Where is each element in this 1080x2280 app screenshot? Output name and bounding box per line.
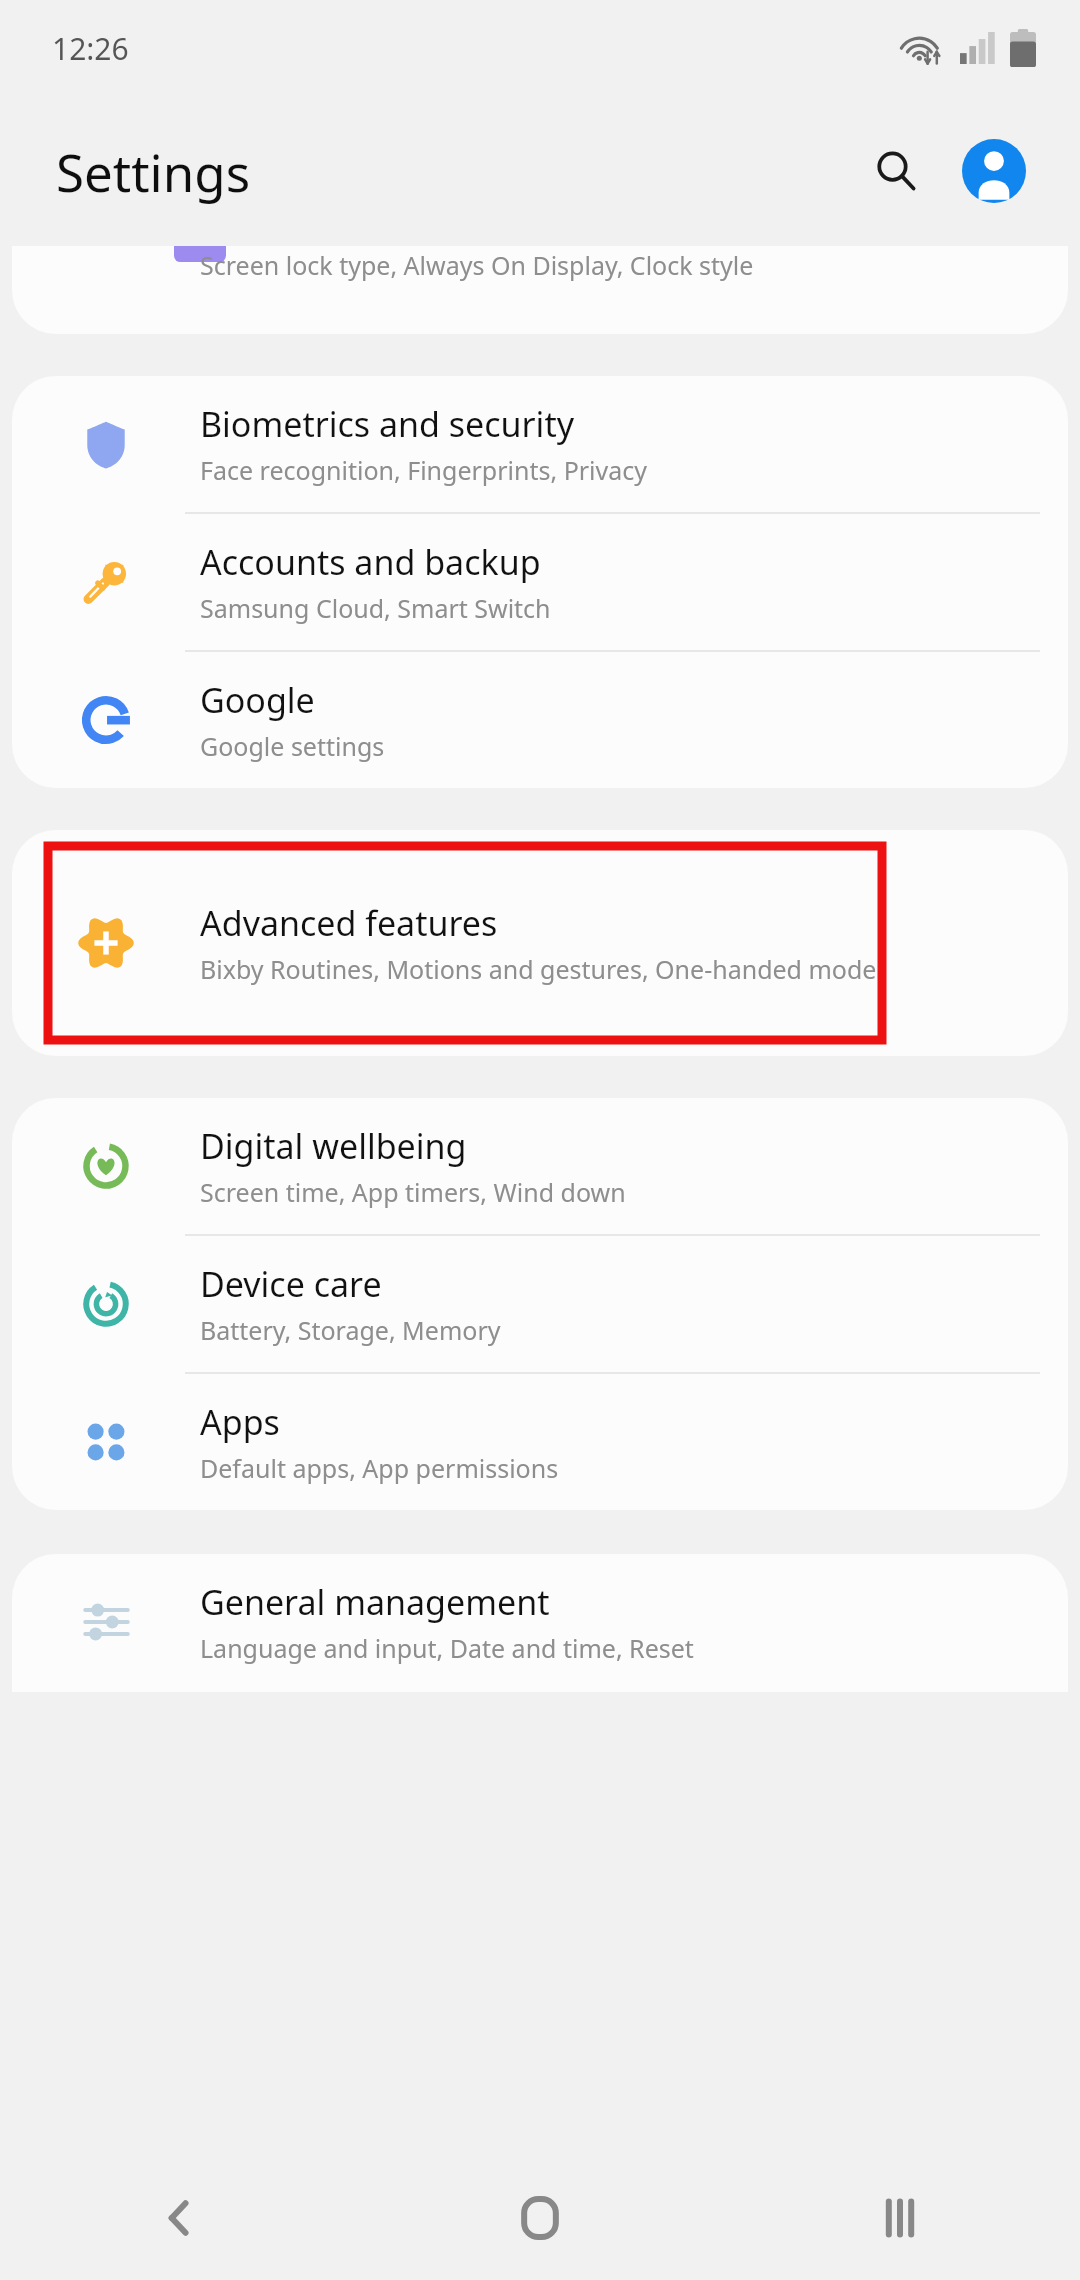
staticText: Advanced features [200,900,498,946]
staticText: Default apps, App permissions [200,1451,559,1485]
button[interactable]: Accounts and backup [12,514,1068,652]
staticText: Google settings [200,729,385,763]
staticText: Google [200,677,315,723]
staticText: Digital wellbeing [200,1123,467,1169]
staticText: Face recognition, Fingerprints, Privacy [200,453,648,487]
button[interactable]: Digital wellbeing [12,1098,1068,1236]
staticText: Samsung Cloud, Smart Switch [200,591,551,625]
staticText: 12:26 [52,28,129,69]
staticText: Screen time, App timers, Wind down [200,1175,626,1209]
staticText: Bixby Routines, Motions and gestures, On… [200,952,877,986]
button[interactable]: General management [12,1554,1068,1692]
button[interactable]: Home [360,2156,720,2280]
button[interactable]: Samsung account [948,125,1040,217]
staticText: Language and input, Date and time, Reset [200,1631,694,1665]
button[interactable]: Back [0,2156,360,2280]
button[interactable]: Biometrics and security [12,376,1068,514]
staticText: Device care [200,1261,382,1307]
staticText: Battery, Storage, Memory [200,1313,501,1347]
staticText: Screen lock type, Always On Display, Clo… [200,248,754,282]
button[interactable]: Google [12,652,1068,788]
button[interactable]: Screen lock type, Always On Display, Clo… [12,246,1068,334]
button[interactable]: Advanced features [12,830,1068,1056]
button[interactable]: Apps [12,1374,1068,1510]
button[interactable]: Recents [720,2156,1080,2280]
button[interactable]: Device care [12,1236,1068,1374]
staticText: Settings [56,137,251,206]
staticText: Apps [200,1399,280,1445]
button[interactable]: Search [850,125,942,217]
staticText: Accounts and backup [200,539,541,585]
staticText: General management [200,1579,550,1625]
staticText: Biometrics and security [200,401,574,447]
